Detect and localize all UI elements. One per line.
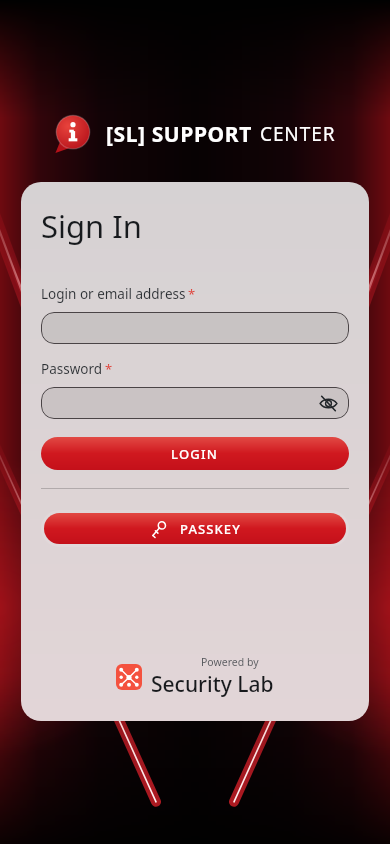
button[interactable]: Show password [41, 387, 349, 419]
button[interactable]: PASSKEY [44, 513, 346, 544]
staticText: CENTER [260, 121, 336, 147]
staticText: PASSKEY [180, 520, 241, 538]
staticText: Powered by [201, 655, 259, 669]
staticText: * [188, 285, 196, 303]
staticText: [SL] SUPPORT [106, 120, 252, 149]
staticText: LOGIN [171, 445, 219, 463]
button[interactable]: Show password [317, 392, 339, 414]
staticText: Security Lab [151, 670, 274, 699]
other: Security Lab [116, 664, 142, 690]
staticText: * [105, 360, 113, 378]
staticText: Login or email address [41, 285, 186, 303]
other: Support center logo [54, 115, 92, 153]
staticText: Sign In [41, 205, 142, 247]
button[interactable]: LOGIN [41, 437, 349, 470]
staticText: Password [41, 360, 103, 378]
button[interactable] [41, 312, 349, 344]
